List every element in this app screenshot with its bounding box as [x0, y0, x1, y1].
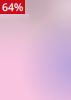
staticText: 64% — [2, 0, 23, 14]
